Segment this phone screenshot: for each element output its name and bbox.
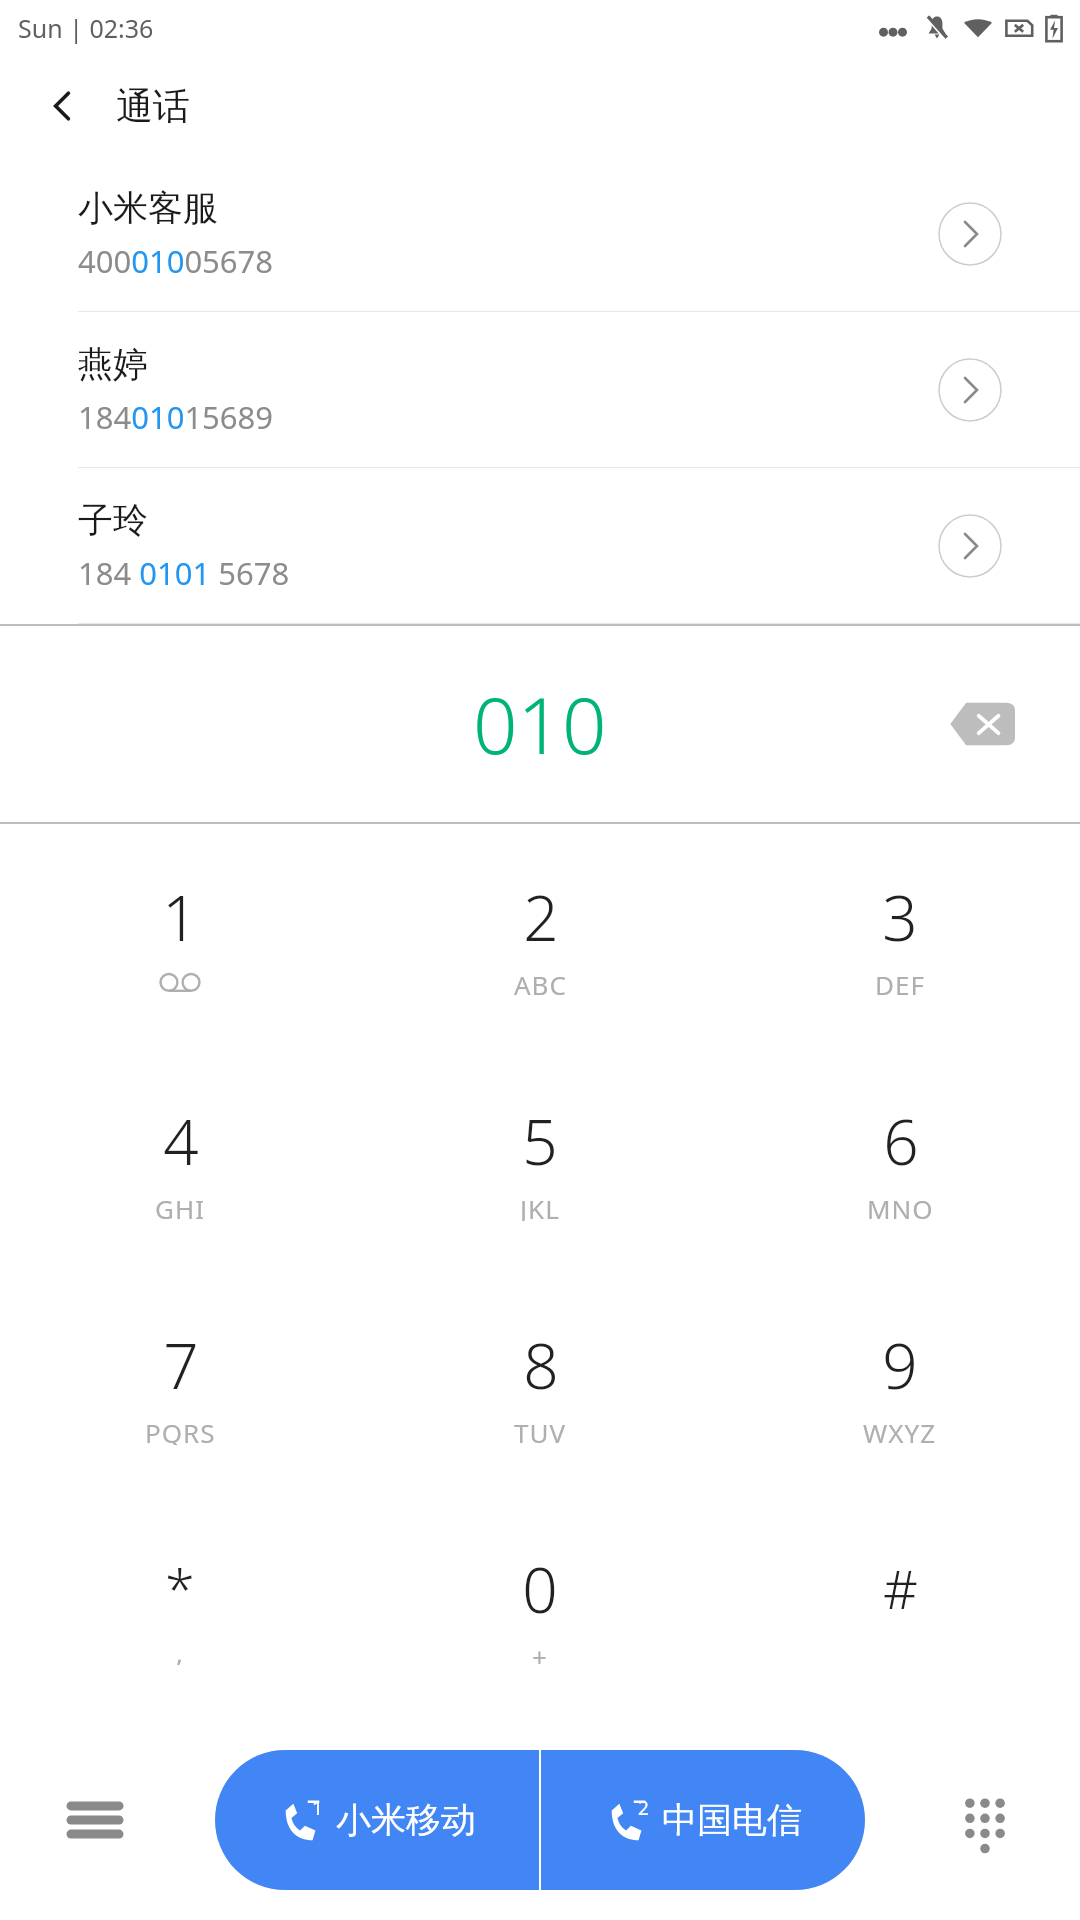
button[interactable]: 9	[720, 1272, 1080, 1496]
staticText: DEF	[875, 967, 925, 997]
staticText: WXYZ	[863, 1415, 937, 1445]
staticText: Sun | 02:36	[18, 11, 154, 45]
button[interactable]: Details	[938, 202, 1002, 266]
button[interactable]: 燕婷	[0, 312, 1080, 467]
staticText: 1	[312, 1795, 323, 1821]
staticText: 中国电信	[662, 1798, 802, 1842]
staticText: ,	[176, 1635, 184, 1665]
button[interactable]: 3	[720, 824, 1080, 1048]
button[interactable]: 5	[360, 1048, 720, 1272]
button[interactable]: 6	[720, 1048, 1080, 1272]
button[interactable]: 小米客服	[0, 156, 1080, 311]
button[interactable]: Back	[30, 74, 94, 138]
button[interactable]: 8	[360, 1272, 720, 1496]
staticText: *	[165, 1551, 195, 1625]
button[interactable]: 子玲	[0, 468, 1080, 623]
staticText: 3	[882, 875, 918, 959]
staticText: ABC	[514, 967, 567, 997]
staticText: 184 0101 5678	[78, 552, 290, 594]
button[interactable]: *	[0, 1496, 360, 1720]
staticText: +	[532, 1639, 548, 1669]
staticText: 小米客服	[78, 186, 218, 230]
staticText: 40001005678	[78, 240, 274, 282]
staticText: PQRS	[145, 1415, 216, 1445]
staticText: 18401015689	[78, 396, 274, 438]
button[interactable]: Backspace	[934, 676, 1030, 772]
staticText: 2	[523, 875, 559, 959]
staticText: TUV	[514, 1415, 567, 1445]
staticText: 6	[883, 1099, 919, 1183]
staticText: 7	[163, 1323, 199, 1407]
button[interactable]: 0	[360, 1496, 720, 1720]
staticText: 9	[882, 1323, 918, 1407]
button[interactable]: 7	[0, 1272, 360, 1496]
button[interactable]: 2	[360, 824, 720, 1048]
staticText: #	[883, 1551, 918, 1625]
staticText: 燕婷	[78, 342, 148, 386]
staticText: 8	[523, 1323, 559, 1407]
staticText: MNO	[867, 1191, 934, 1221]
button[interactable]: #	[720, 1496, 1080, 1720]
staticText: 4	[163, 1099, 199, 1183]
button[interactable]: 1	[0, 824, 360, 1048]
button[interactable]: 1	[215, 1750, 539, 1890]
staticText: 0	[522, 1547, 558, 1631]
staticText: 子玲	[78, 498, 148, 542]
staticText: 010	[473, 671, 607, 777]
staticText: 2	[638, 1795, 649, 1821]
button[interactable]: Menu	[50, 1775, 140, 1865]
staticText: 1	[162, 875, 198, 959]
staticText: 5	[522, 1099, 558, 1183]
button[interactable]: Details	[938, 514, 1002, 578]
button[interactable]: 2	[541, 1750, 865, 1890]
button[interactable]: 4	[0, 1048, 360, 1272]
button[interactable]: Dialpad	[940, 1775, 1030, 1865]
staticText: 小米移动	[336, 1798, 476, 1842]
staticText: JKL	[520, 1191, 560, 1221]
button[interactable]: Details	[938, 358, 1002, 422]
staticText: 通话	[116, 83, 190, 130]
staticText: GHI	[155, 1191, 206, 1221]
